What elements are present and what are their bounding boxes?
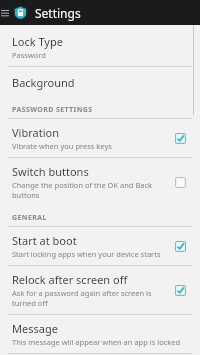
- staticText: Message: [12, 321, 58, 336]
- staticText: Vibration: [12, 125, 59, 140]
- button[interactable]: Relock after screen off: [0, 266, 200, 315]
- staticText: Password: [12, 50, 46, 60]
- button[interactable]: Lock Type: [0, 30, 200, 67]
- button[interactable]: Message: [0, 315, 200, 354]
- button[interactable]: Start at boot: [0, 227, 200, 266]
- staticText: PASSWORD SETTINGS: [12, 105, 93, 115]
- staticText: Vibrate when you press keys: [12, 141, 112, 151]
- staticText: Background: [12, 75, 75, 90]
- staticText: Ask for a password again after screen is…: [12, 288, 169, 308]
- staticText: Relock after screen off: [12, 272, 128, 287]
- staticText: Change the position of the OK and Back b…: [12, 180, 169, 200]
- staticText: Settings: [35, 5, 81, 21]
- staticText: GENERAL: [12, 213, 47, 223]
- button[interactable]: Switch buttons: [0, 158, 200, 206]
- staticText: Switch buttons: [12, 164, 89, 179]
- staticText: Start at boot: [12, 233, 77, 248]
- button[interactable]: Navigation menu: [0, 0, 10, 25]
- staticText: Lock Type: [12, 34, 63, 49]
- staticText: Start locking apps when your device star…: [12, 249, 161, 259]
- staticText: This message will appear when an app is …: [12, 337, 181, 347]
- button[interactable]: Vibration: [0, 119, 200, 158]
- button[interactable]: Background: [0, 67, 200, 98]
